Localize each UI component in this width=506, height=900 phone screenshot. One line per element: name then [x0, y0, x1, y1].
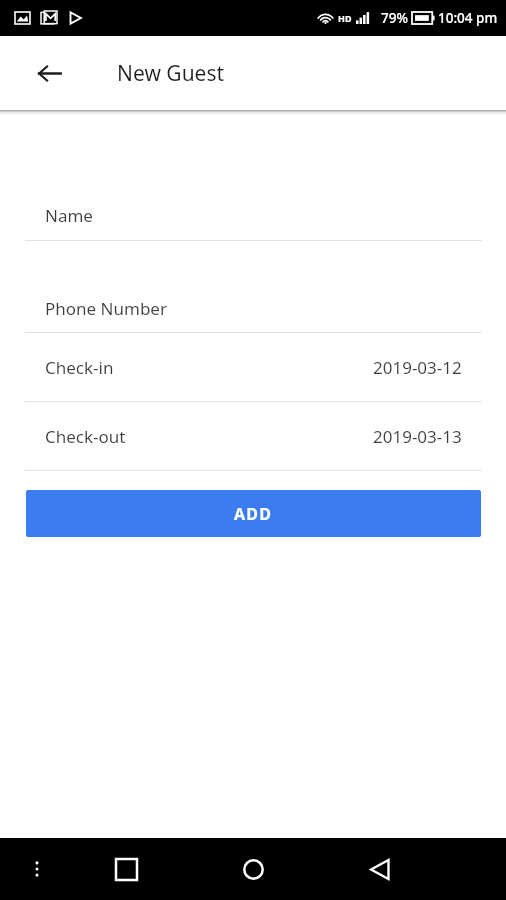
- button[interactable]: Back: [25, 49, 73, 97]
- button[interactable]: Home: [229, 838, 277, 900]
- button[interactable]: More options: [13, 838, 61, 900]
- button[interactable]: Check-in: [0, 333, 506, 401]
- button[interactable]: Recent apps: [102, 838, 150, 900]
- staticText: 2019-03-12: [373, 356, 462, 379]
- staticText: New Guest: [117, 59, 225, 88]
- staticText: ADD: [234, 503, 273, 525]
- staticText: 10:04 pm: [438, 9, 498, 27]
- button[interactable]: Back: [356, 838, 404, 900]
- button[interactable]: Name: [0, 195, 506, 235]
- staticText: Name: [45, 204, 93, 227]
- staticText: 79%: [381, 9, 408, 27]
- staticText: HD: [338, 12, 352, 24]
- staticText: Check-in: [45, 356, 114, 379]
- button[interactable]: Check-out: [0, 402, 506, 470]
- button[interactable]: Phone Number: [0, 288, 506, 328]
- staticText: Check-out: [45, 425, 126, 448]
- staticText: 2019-03-13: [373, 425, 462, 448]
- staticText: Phone Number: [45, 297, 167, 320]
- button[interactable]: ADD: [26, 490, 481, 537]
